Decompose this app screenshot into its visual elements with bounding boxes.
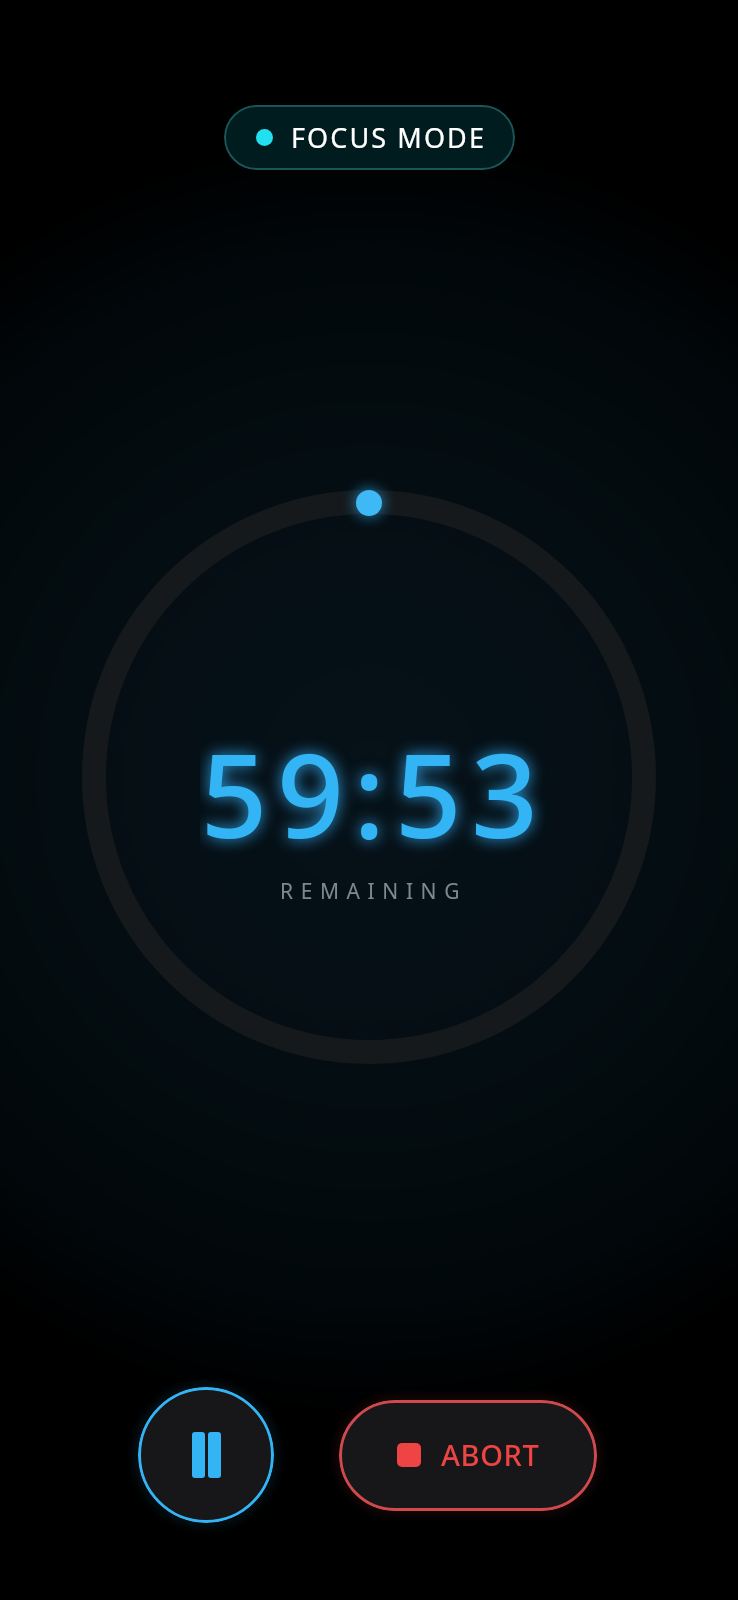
staticText: FOCUS MODE: [291, 119, 487, 156]
button[interactable]: FOCUS MODE: [224, 105, 515, 170]
button[interactable]: Pause: [138, 1387, 274, 1523]
staticText: 59:53: [200, 713, 548, 872]
button[interactable]: ABORT: [339, 1400, 597, 1511]
staticText: ABORT: [441, 1435, 540, 1474]
staticText: 59:53: [200, 713, 548, 872]
staticText: REMAINING: [280, 877, 468, 906]
